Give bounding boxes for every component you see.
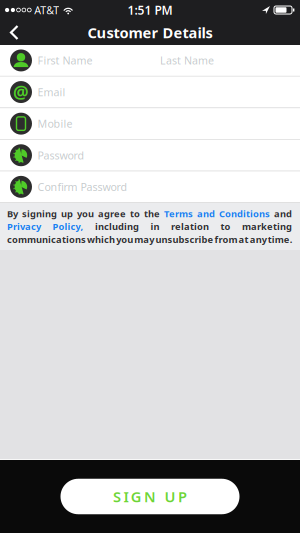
button[interactable]: Privacy xyxy=(7,220,41,233)
staticText: 1:51 PM xyxy=(127,2,172,18)
button[interactable]: Confirm Password xyxy=(0,171,300,202)
staticText: and xyxy=(274,207,292,220)
staticText: unsubscribe xyxy=(155,233,213,245)
staticText: Customer Details xyxy=(87,23,212,42)
staticText: marketing xyxy=(242,220,292,233)
staticText: communications xyxy=(7,233,86,245)
staticText: up xyxy=(61,207,73,220)
staticText: First Name xyxy=(37,53,92,68)
staticText: at xyxy=(239,233,249,245)
button[interactable]: Conditions xyxy=(219,207,270,220)
button[interactable]: Back xyxy=(0,21,19,43)
staticText: which xyxy=(87,233,115,245)
staticText: you xyxy=(116,233,133,245)
button[interactable]: Policy, xyxy=(52,220,83,233)
staticText: @ xyxy=(13,80,29,103)
staticText: any xyxy=(250,233,267,245)
staticText: in xyxy=(150,220,159,233)
staticText: relation xyxy=(171,220,209,233)
button[interactable]: Password xyxy=(0,140,300,171)
staticText: Last Name xyxy=(160,53,214,68)
staticText: SIGN UP xyxy=(113,487,187,506)
button[interactable]: and xyxy=(197,207,215,220)
staticText: agree xyxy=(98,207,126,220)
staticText: may xyxy=(134,233,154,245)
staticText: Mobile xyxy=(37,117,72,131)
staticText: the xyxy=(144,207,160,220)
button[interactable]: Terms xyxy=(164,207,193,220)
staticText: Conditions xyxy=(219,207,270,220)
staticText: Terms xyxy=(164,207,193,220)
staticText: signing xyxy=(22,207,57,220)
staticText: you xyxy=(77,207,94,220)
staticText: time. xyxy=(268,233,293,245)
button[interactable]: First Name xyxy=(0,45,160,76)
staticText: to xyxy=(220,220,230,233)
button[interactable]: Last Name xyxy=(160,45,300,76)
staticText: including xyxy=(95,220,139,233)
button[interactable]: Mobile xyxy=(0,108,300,139)
staticText: and xyxy=(197,207,215,220)
staticText: from xyxy=(214,233,237,245)
staticText: Confirm Password xyxy=(37,180,127,194)
staticText: to xyxy=(130,207,140,220)
button[interactable]: SIGN UP xyxy=(60,479,239,514)
staticText: Email xyxy=(37,85,65,99)
staticText: Privacy xyxy=(7,220,41,233)
staticText: Policy, xyxy=(52,220,83,233)
staticText: AT&T xyxy=(34,3,59,17)
staticText: Password xyxy=(37,148,84,162)
button[interactable]: @ xyxy=(0,77,300,107)
staticText: By xyxy=(7,207,18,220)
